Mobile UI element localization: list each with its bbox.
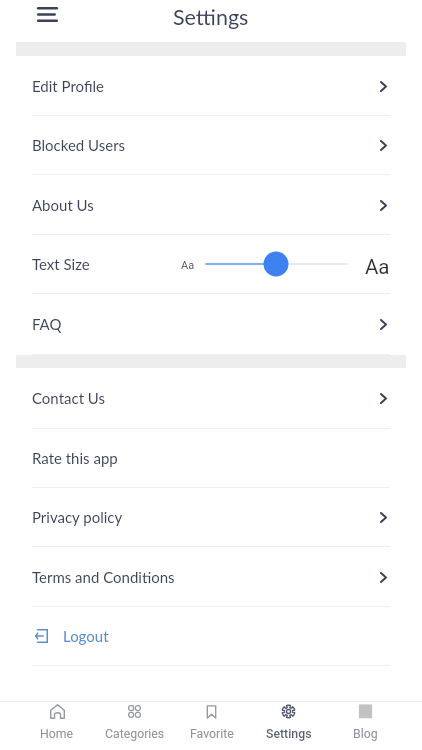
button[interactable]: Blog: [327, 702, 404, 750]
staticText: Text Size: [32, 255, 90, 273]
staticText: Privacy policy: [32, 508, 123, 526]
button[interactable]: Contact Us: [0, 368, 422, 428]
button[interactable]: Menu: [30, 0, 64, 28]
button[interactable]: Terms and Conditions: [0, 547, 422, 606]
staticText: Terms and Conditions: [32, 568, 175, 586]
button[interactable]: FAQ: [0, 294, 422, 354]
button[interactable]: About Us: [0, 175, 422, 234]
staticText: Aa: [365, 255, 390, 279]
staticText: About Us: [32, 196, 94, 214]
staticText: Home: [40, 727, 74, 741]
staticText: Edit Profile: [32, 77, 104, 95]
button[interactable]: Home: [18, 702, 96, 750]
button[interactable]: Settings: [250, 702, 327, 750]
button[interactable]: Blocked Users: [0, 116, 422, 174]
staticText: Categories: [105, 727, 165, 741]
staticText: Settings: [173, 4, 249, 30]
button[interactable]: Rate this app: [0, 429, 422, 487]
staticText: Blocked Users: [32, 136, 126, 154]
staticText: Rate this app: [32, 449, 118, 467]
staticText: Aa: [181, 259, 195, 272]
button[interactable]: Edit Profile: [0, 56, 422, 115]
button[interactable]: Logout: [0, 607, 422, 665]
button[interactable]: Categories: [96, 702, 173, 750]
button[interactable]: Privacy policy: [0, 488, 422, 546]
staticText: Contact Us: [32, 389, 106, 407]
staticText: Blog: [353, 727, 378, 741]
staticText: FAQ: [32, 315, 62, 333]
staticText: Favorite: [190, 727, 234, 741]
staticText: Settings: [266, 727, 312, 741]
button[interactable]: Text size slider: [200, 249, 353, 279]
button[interactable]: Favorite: [173, 702, 250, 750]
staticText: Logout: [63, 627, 109, 645]
